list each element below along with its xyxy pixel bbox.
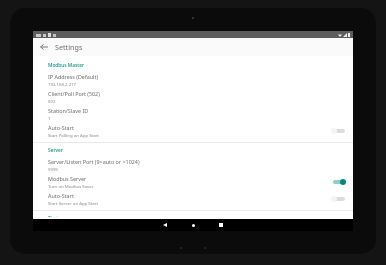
button[interactable]: Switch on [331,177,346,187]
button[interactable]: IP Address (Default) [33,71,353,88]
staticText: 192.168.2.217 [48,81,77,87]
staticText: IP Address (Default) [48,73,99,80]
staticText: Server/Listen Port (9=auto or >1024) [48,158,140,165]
staticText: Settings [55,42,83,52]
staticText: 1 [48,115,51,121]
staticText: Start Polling on App Start [48,132,99,138]
staticText: Station/Slave ID [48,107,89,114]
staticText: 502 [48,98,56,104]
staticText: Auto-Start [48,124,74,131]
staticText: Timing [48,215,64,217]
staticText: Server [48,147,63,154]
staticText: Modbus Master [48,62,84,69]
button[interactable]: Navigate up [36,39,52,55]
button[interactable]: Recent apps [207,219,235,231]
button[interactable]: Auto-Start [33,122,353,139]
staticText: Auto-Start [48,192,74,199]
staticText: Start Server on App Start [48,200,98,206]
button[interactable]: Modbus Server [33,173,353,190]
staticText: Client/Poll Port (502) [48,90,100,97]
button[interactable]: Home [179,219,207,231]
button[interactable]: Station/Slave ID [33,105,353,122]
button[interactable]: Switch off [331,126,346,136]
button[interactable]: Switch off [331,194,346,204]
button[interactable]: Auto-Start [33,190,353,207]
button[interactable]: Back [151,219,179,231]
staticText: Modbus Server [48,175,87,182]
button[interactable]: Client/Poll Port (502) [33,88,353,105]
staticText: 9999 [48,166,58,172]
button[interactable]: Server/Listen Port (9=auto or >1024) [33,156,353,173]
staticText: Turn on Modbus Sever [48,183,94,189]
